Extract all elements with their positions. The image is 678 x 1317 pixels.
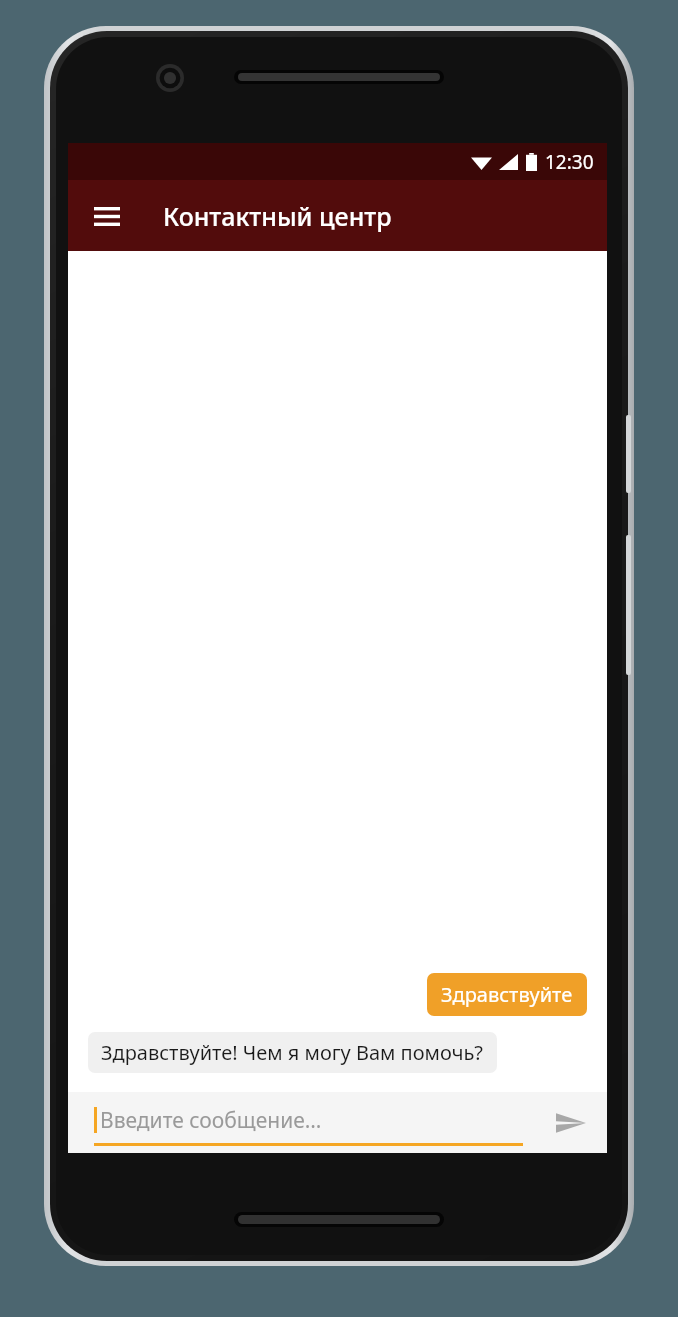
button[interactable]: Здравствуйте! Чем я могу Вам помочь? [88,1032,497,1073]
staticText: Контактный центр [163,199,392,233]
staticText: Введите сообщение… [100,1106,322,1135]
staticText: Здравствуйте! Чем я могу Вам помочь? [101,1039,484,1066]
staticText: 12:30 [545,149,594,175]
staticText: Здравствуйте [441,981,573,1008]
button[interactable]: Send message [545,1097,597,1149]
button[interactable]: Введите сообщение… [94,1100,523,1146]
button[interactable]: Open navigation menu [82,191,132,241]
button[interactable]: Здравствуйте [427,973,587,1016]
